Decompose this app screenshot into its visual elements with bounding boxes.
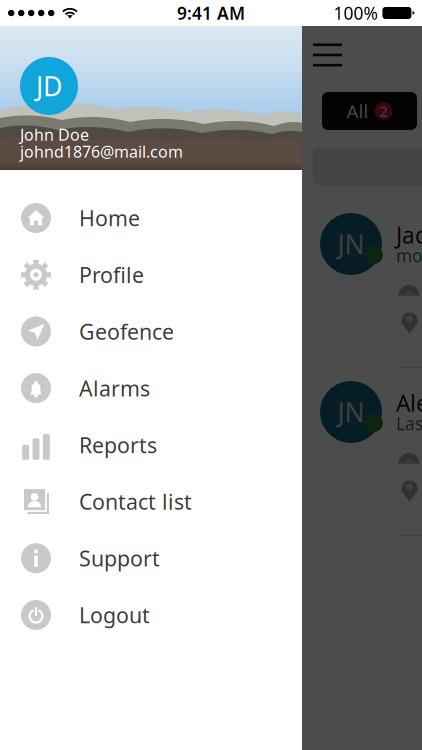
staticText: Geofence [79, 317, 174, 346]
staticText: Profile [79, 261, 144, 289]
staticText: moving [396, 244, 422, 267]
button[interactable]: Profile [0, 246, 302, 303]
button[interactable]: Support [0, 530, 302, 587]
staticText: Reports [79, 431, 157, 459]
button[interactable]: Geofence [0, 303, 302, 360]
staticText: All [346, 99, 368, 123]
staticText: 9:41 AM [177, 1, 245, 24]
button[interactable]: Contact list [0, 473, 302, 530]
button[interactable]: Logout [0, 587, 302, 643]
staticText: John Doe [20, 124, 89, 145]
staticText: Support [79, 544, 160, 572]
staticText: JN [337, 394, 364, 430]
staticText: Contact list [79, 487, 192, 516]
staticText: Logout [79, 601, 150, 629]
staticText: Alarms [79, 374, 150, 402]
staticText: 2 [379, 101, 387, 121]
staticText: Last seen 12:40 [396, 412, 422, 435]
button[interactable]: Home [0, 190, 302, 246]
staticText: JD [36, 68, 62, 104]
button[interactable]: Alarms [0, 360, 302, 416]
staticText: JN [337, 226, 364, 262]
staticText: johnd1876@mail.com [20, 141, 183, 162]
button[interactable]: Reports [0, 416, 302, 473]
staticText: 100% [333, 1, 377, 24]
staticText: Jack Nelson [396, 220, 422, 250]
staticText: Home [79, 204, 140, 232]
staticText: Alex Fernandez [396, 388, 422, 418]
